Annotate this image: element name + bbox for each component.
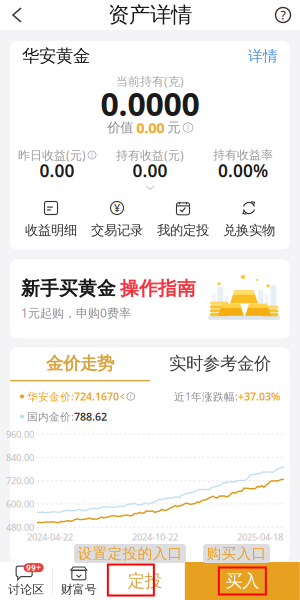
button[interactable]: 我的定投: [150, 200, 216, 238]
staticText: 0.00%: [218, 159, 268, 182]
staticText: 2025-04-18: [237, 531, 283, 543]
button[interactable]: 新手买黄金: [10, 259, 290, 338]
button[interactable]: 金价走势: [10, 351, 150, 381]
staticText: 600.00: [6, 498, 34, 510]
staticText: 0.00: [39, 159, 74, 182]
staticText: 近1年涨跌幅:: [174, 389, 238, 404]
staticText: 0.00: [136, 118, 164, 137]
staticText: 99+: [26, 562, 41, 573]
staticText: 元: [167, 119, 180, 136]
staticText: 当前持有(克): [116, 73, 184, 89]
button[interactable]: 财富号: [53, 562, 105, 600]
staticText: 详情: [248, 47, 278, 65]
staticText: 收益明细: [25, 222, 77, 238]
staticText: 0.0000: [100, 82, 199, 125]
staticText: ?: [280, 7, 285, 23]
staticText: 2024-04-22: [27, 531, 73, 543]
button[interactable]: 兑换实物: [216, 200, 282, 238]
staticText: 购买入口: [206, 544, 266, 562]
button[interactable]: 买入: [185, 562, 300, 600]
button[interactable]: 详情: [248, 47, 278, 65]
staticText: 交易记录: [91, 222, 143, 238]
staticText: 1元起购，申购0费率: [21, 305, 131, 321]
staticText: 0.00: [132, 159, 167, 182]
staticText: 资产详情: [108, 2, 192, 28]
staticText: i: [91, 151, 93, 159]
staticText: 操作指南: [120, 277, 196, 300]
button[interactable]: 99+: [0, 562, 52, 600]
staticText: 设置定投的入口: [77, 544, 182, 562]
button[interactable]: Back: [0, 0, 34, 30]
staticText: 788.62: [74, 409, 107, 424]
staticText: +37.03%: [238, 389, 280, 404]
staticText: 新手买黄金: [21, 277, 116, 300]
staticText: i: [130, 392, 132, 401]
staticText: 买入: [225, 570, 259, 592]
staticText: 金价走势: [46, 353, 114, 374]
staticText: 724.1670: [74, 389, 119, 404]
staticText: 持有收益(元): [116, 147, 184, 163]
staticText: 960.00: [6, 428, 34, 440]
button[interactable]: Help: [266, 0, 300, 30]
button[interactable]: 实时参考金价: [150, 351, 290, 381]
staticText: 定投: [128, 570, 162, 592]
staticText: 昨日收益(元): [18, 147, 86, 163]
staticText: 720.00: [6, 474, 34, 487]
staticText: 国内金价:: [24, 409, 74, 424]
staticText: 讨论区: [8, 582, 44, 597]
staticText: 实时参考金价: [169, 353, 271, 374]
staticText: 华安金价:: [24, 389, 74, 404]
staticText: 持有收益率: [213, 148, 273, 162]
staticText: 价值: [107, 119, 133, 136]
staticText: 480.00: [6, 521, 34, 533]
staticText: 财富号: [61, 582, 97, 597]
button[interactable]: 定投: [105, 562, 185, 600]
staticText: ¥: [114, 201, 120, 215]
staticText: 2024-10-22: [132, 531, 178, 543]
staticText: i: [187, 122, 189, 133]
button[interactable]: ¥: [84, 200, 150, 238]
button[interactable]: 收益明细: [18, 200, 84, 238]
staticText: 华安黄金: [22, 45, 90, 67]
staticText: 兑换实物: [223, 222, 275, 238]
staticText: 我的定投: [157, 222, 209, 238]
staticText: 840.00: [6, 451, 34, 464]
